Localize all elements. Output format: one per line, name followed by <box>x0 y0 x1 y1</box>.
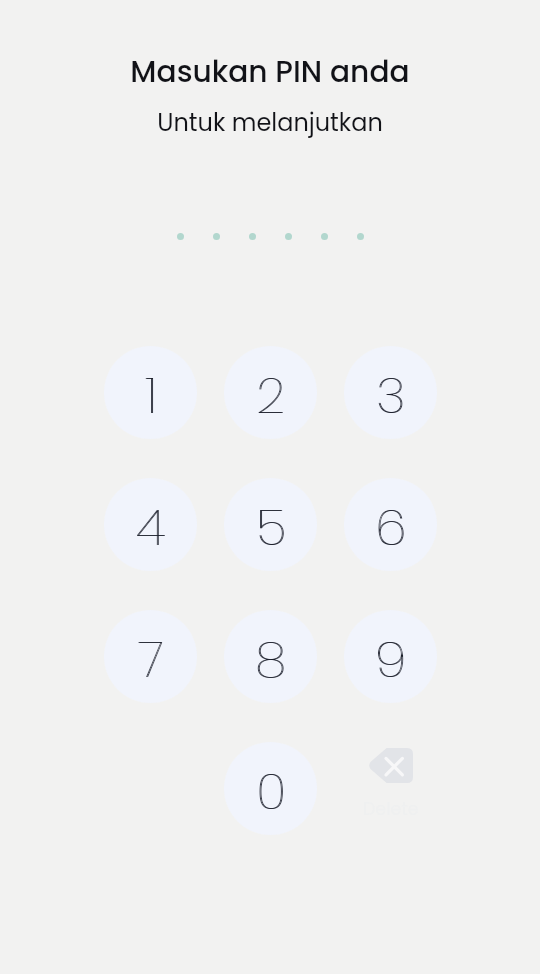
staticText: 3 <box>377 361 406 431</box>
button[interactable]: 1 <box>104 346 197 439</box>
staticText: 5 <box>257 493 287 563</box>
button[interactable]: 4 <box>104 478 197 571</box>
staticText: 1 <box>146 361 158 431</box>
staticText: 7 <box>138 625 164 695</box>
staticText: 6 <box>375 493 406 563</box>
staticText: 0 <box>256 757 286 827</box>
button[interactable]: 6 <box>344 478 437 571</box>
button[interactable]: 5 <box>224 478 317 571</box>
staticText: 4 <box>137 493 166 563</box>
staticText: 2 <box>257 361 286 431</box>
staticText: 4 <box>136 493 165 563</box>
button[interactable]: 7 <box>104 610 197 703</box>
staticText: 8 <box>256 625 287 695</box>
staticText: 3 <box>376 361 405 431</box>
staticText: 0 <box>257 757 287 827</box>
button[interactable]: Delete <box>344 742 437 835</box>
staticText: Untuk melanjutkan <box>157 106 383 140</box>
staticText: 8 <box>255 625 286 695</box>
staticText: 2 <box>256 361 285 431</box>
staticText: Masukan PIN anda <box>130 51 410 93</box>
staticText: 6 <box>376 493 407 563</box>
button[interactable]: 9 <box>344 610 437 703</box>
button[interactable]: 3 <box>344 346 437 439</box>
staticText: 9 <box>375 625 406 695</box>
staticText: 5 <box>256 493 286 563</box>
staticText: 9 <box>376 625 407 695</box>
staticText: 1 <box>145 361 157 431</box>
button[interactable]: 0 <box>224 742 317 835</box>
button[interactable]: 8 <box>224 610 317 703</box>
button[interactable]: 2 <box>224 346 317 439</box>
staticText: 7 <box>139 625 165 695</box>
